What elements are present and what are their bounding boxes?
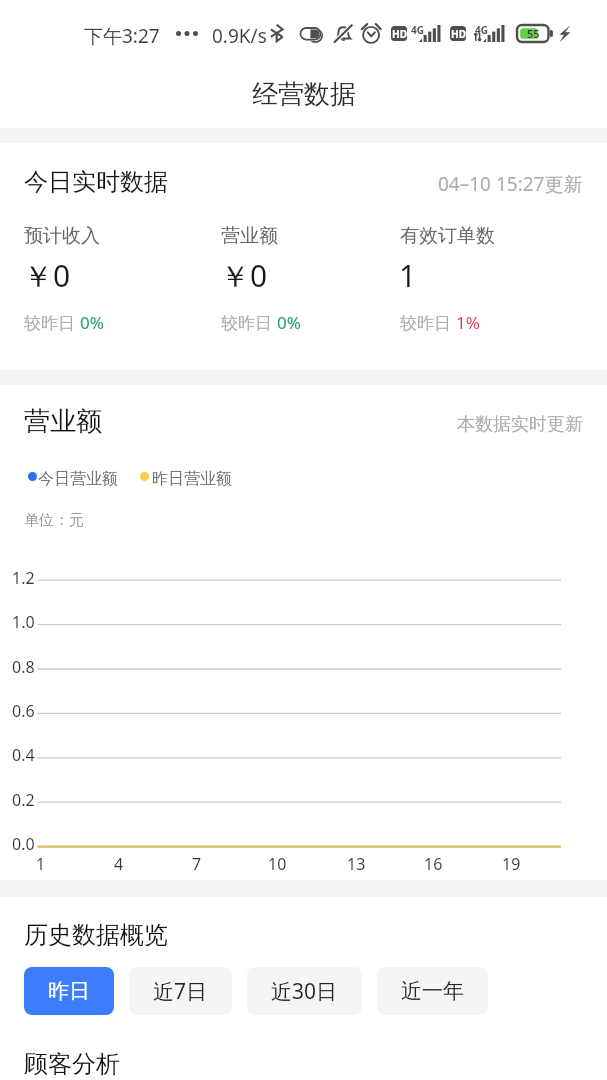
staticText: 1.0: [12, 611, 35, 633]
staticText: 单位：元: [24, 511, 84, 530]
staticText: 近7日: [153, 977, 208, 1006]
staticText: 4G: [411, 23, 424, 37]
staticText: 0.8: [12, 656, 35, 678]
staticText: 昨日营业额: [152, 469, 232, 489]
staticText: 今日实时数据: [24, 167, 168, 197]
staticText: 较昨日: [24, 311, 80, 334]
staticText: 04–10 15:27更新: [438, 171, 583, 197]
button[interactable]: 近30日: [247, 967, 362, 1015]
staticText: 营业额: [221, 224, 278, 248]
button[interactable]: 近7日: [129, 967, 232, 1015]
staticText: 本数据实时更新: [457, 413, 583, 436]
staticText: 近30日: [271, 977, 338, 1006]
button[interactable]: 近一年: [377, 967, 488, 1015]
staticText: 0.0: [12, 833, 35, 855]
staticText: 经营数据: [252, 78, 356, 111]
staticText: 0.4: [12, 744, 35, 766]
staticText: 16: [424, 853, 443, 875]
staticText: 0.2: [12, 789, 35, 811]
staticText: 1%: [456, 311, 480, 334]
staticText: 55: [527, 26, 540, 41]
staticText: 7: [192, 853, 202, 875]
staticText: 19: [502, 853, 521, 875]
staticText: 4G: [475, 23, 488, 37]
staticText: HD: [392, 27, 407, 41]
button[interactable]: 昨日: [24, 967, 114, 1015]
staticText: HD: [451, 27, 466, 41]
staticText: 较昨日: [221, 311, 277, 334]
staticText: 1: [399, 255, 417, 296]
staticText: 下午3:27: [84, 23, 160, 49]
staticText: 0.9K/s: [212, 23, 267, 49]
staticText: 0%: [277, 311, 301, 334]
staticText: 较昨日: [400, 311, 456, 334]
staticText: 顾客分析: [24, 1049, 120, 1079]
staticText: 历史数据概览: [24, 920, 168, 950]
staticText: 0%: [80, 311, 104, 334]
staticText: 昨日: [48, 978, 90, 1004]
staticText: 4: [114, 853, 124, 875]
staticText: 13: [347, 853, 366, 875]
staticText: 1: [36, 853, 46, 875]
staticText: 预计收入: [24, 224, 100, 248]
staticText: ￥0: [23, 255, 71, 296]
staticText: 今日营业额: [38, 469, 118, 489]
staticText: 0.6: [12, 700, 35, 722]
staticText: 近一年: [401, 978, 464, 1004]
staticText: 营业额: [24, 405, 102, 438]
staticText: 有效订单数: [400, 224, 495, 248]
staticText: 10: [268, 853, 287, 875]
staticText: ￥0: [220, 255, 268, 296]
staticText: 1.2: [12, 567, 35, 589]
